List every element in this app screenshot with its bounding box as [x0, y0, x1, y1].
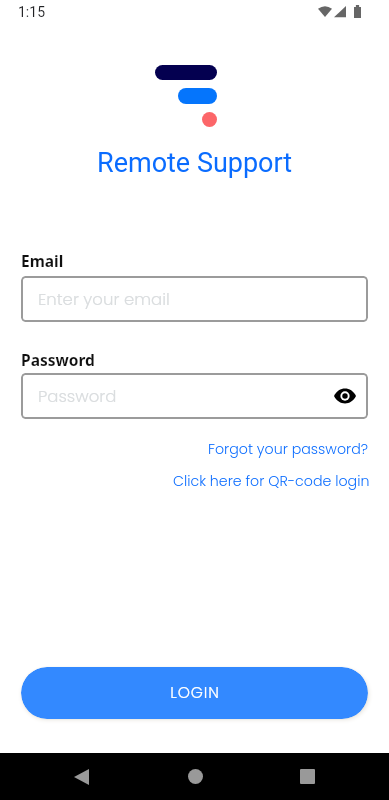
staticText: LOGIN [170, 682, 220, 704]
button[interactable]: Home [155, 753, 235, 800]
button[interactable]: Show password [332, 383, 358, 409]
staticText: Password [38, 385, 117, 408]
staticText: Password [21, 349, 95, 370]
button[interactable]: Password [21, 373, 368, 419]
button[interactable]: Recent apps [267, 753, 347, 800]
staticText: Enter your email [38, 288, 170, 311]
button[interactable]: Enter your email [21, 276, 368, 322]
staticText: Email [21, 250, 64, 271]
button[interactable]: Forgot your password? [208, 439, 368, 459]
button[interactable]: Back [41, 753, 121, 800]
staticText: 1:15 [18, 4, 45, 20]
staticText: Remote Support [97, 147, 293, 179]
button[interactable]: LOGIN [21, 667, 368, 719]
button[interactable]: Click here for QR-code login [173, 471, 370, 491]
